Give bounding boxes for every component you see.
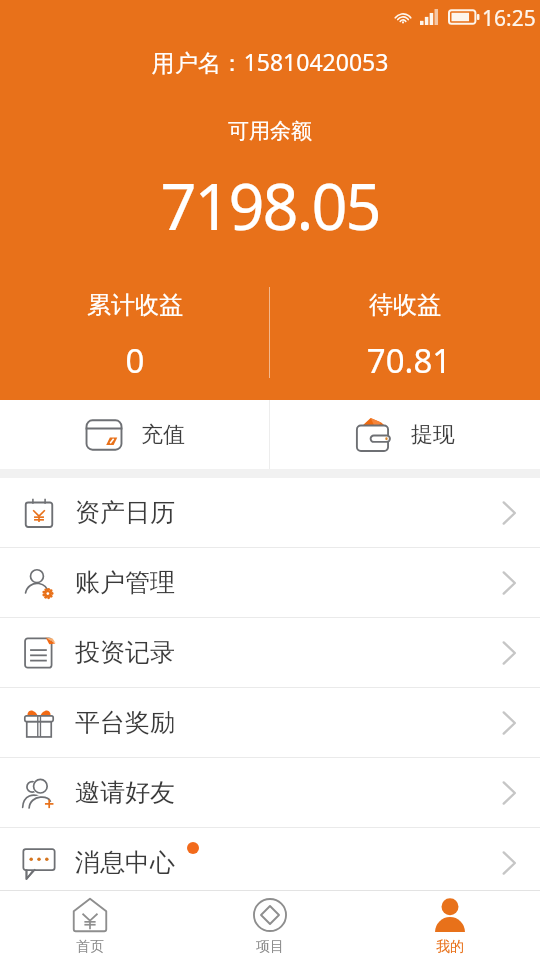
staticText: 待收益 — [270, 290, 540, 320]
button[interactable]: Profile — [360, 891, 540, 960]
button[interactable]: 投资记录 — [0, 618, 540, 687]
staticText: 提现 — [411, 421, 455, 449]
staticText: 累计收益 — [0, 290, 270, 320]
staticText: 我的 — [436, 938, 464, 956]
staticText: 70.81 — [274, 338, 540, 383]
staticText: 项目 — [256, 938, 284, 956]
staticText: 消息中心 — [75, 847, 175, 878]
staticText: 平台奖励 — [75, 707, 175, 738]
button[interactable]: 账户管理 — [0, 548, 540, 617]
button[interactable]: Projects — [180, 891, 360, 960]
staticText: 充值 — [141, 421, 185, 449]
staticText: 投资记录 — [75, 637, 175, 668]
button[interactable]: 邀请好友 — [0, 758, 540, 827]
staticText: 0 — [0, 338, 270, 383]
button[interactable]: Home — [0, 891, 180, 960]
button[interactable]: 消息中心 — [0, 828, 540, 897]
button[interactable]: 资产日历 — [0, 478, 540, 547]
staticText: 16:25 — [482, 4, 536, 33]
staticText: 资产日历 — [75, 497, 175, 528]
staticText: 可用余额 — [0, 118, 540, 144]
staticText: 邀请好友 — [75, 777, 175, 808]
button[interactable]: 充值 — [0, 400, 270, 469]
staticText: 7198.05 — [0, 163, 540, 249]
staticText: 用户名：15810420053 — [0, 46, 540, 77]
staticText: 账户管理 — [75, 567, 175, 598]
button[interactable]: 平台奖励 — [0, 688, 540, 757]
button[interactable]: 提现 — [270, 400, 540, 469]
staticText: 首页 — [76, 938, 104, 956]
